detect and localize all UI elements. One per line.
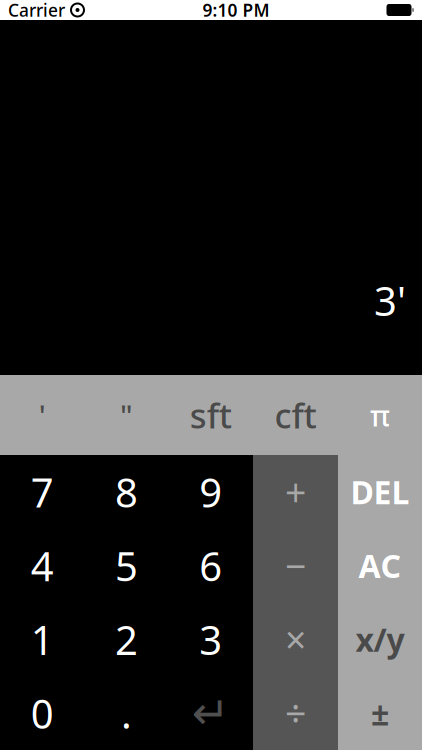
button[interactable]: x/y xyxy=(338,602,422,676)
staticText: Carrier xyxy=(8,0,65,21)
button[interactable]: AC xyxy=(338,529,422,603)
staticText: . xyxy=(121,687,132,740)
button[interactable]: ' xyxy=(0,375,84,455)
button[interactable]: × xyxy=(253,602,338,676)
button[interactable]: 1 xyxy=(0,602,84,676)
staticText: 3 xyxy=(199,613,222,666)
button[interactable]: 8 xyxy=(84,455,169,529)
button[interactable]: 3 xyxy=(169,602,253,676)
button[interactable]: π xyxy=(338,375,422,455)
button[interactable]: + xyxy=(253,455,338,529)
button[interactable]: 2 xyxy=(84,602,169,676)
staticText: AC xyxy=(358,544,401,587)
staticText: + xyxy=(285,467,306,517)
staticText: 9:10 PM xyxy=(202,0,269,21)
staticText: " xyxy=(120,395,133,434)
button[interactable]: cft xyxy=(253,375,338,455)
button[interactable]: ± xyxy=(338,676,422,750)
staticText: ' xyxy=(39,395,46,434)
staticText: x/y xyxy=(355,618,404,661)
staticText: 5 xyxy=(115,539,138,592)
staticText: − xyxy=(285,541,306,590)
staticText: 6 xyxy=(199,539,222,592)
staticText: ↵ xyxy=(192,687,230,739)
button[interactable]: sft xyxy=(169,375,253,455)
button[interactable]: 0 xyxy=(0,676,84,750)
button[interactable]: 9 xyxy=(169,455,253,529)
staticText: 4 xyxy=(31,539,54,592)
staticText: 9 xyxy=(199,465,222,518)
button[interactable]: . xyxy=(84,676,169,750)
staticText: 3' xyxy=(374,274,406,327)
button[interactable]: DEL xyxy=(338,455,422,529)
staticText: 8 xyxy=(115,465,138,518)
staticText: cft xyxy=(274,392,316,438)
button[interactable]: " xyxy=(84,375,169,455)
staticText: 7 xyxy=(31,465,54,518)
button[interactable]: 5 xyxy=(84,529,169,603)
button[interactable]: 6 xyxy=(169,529,253,603)
button[interactable]: 7 xyxy=(0,455,84,529)
button[interactable]: Enter xyxy=(169,676,253,750)
staticText: × xyxy=(285,615,306,664)
staticText: ± xyxy=(371,692,389,734)
staticText: 1 xyxy=(31,613,54,666)
staticText: π xyxy=(370,395,390,434)
staticText: 0 xyxy=(31,687,54,740)
button[interactable]: − xyxy=(253,529,338,603)
staticText: sft xyxy=(190,392,232,438)
button[interactable]: 4 xyxy=(0,529,84,603)
staticText: DEL xyxy=(350,471,409,513)
staticText xyxy=(65,0,70,21)
staticText: ÷ xyxy=(285,688,306,738)
button[interactable]: ÷ xyxy=(253,676,338,750)
staticText: 2 xyxy=(115,613,138,666)
